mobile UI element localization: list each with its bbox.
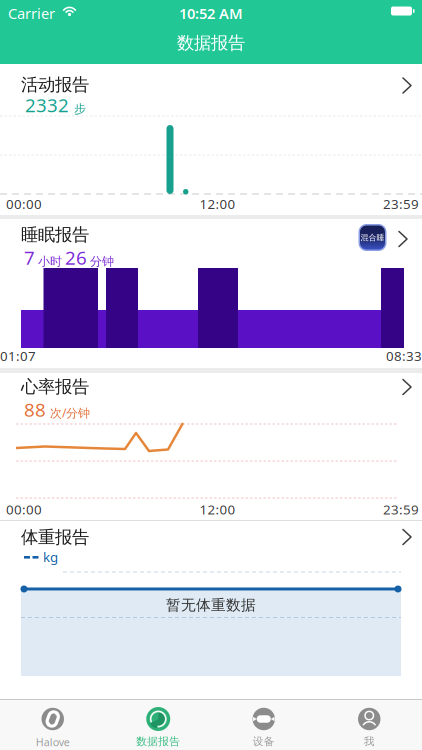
- staticText: 心率报告: [21, 376, 89, 397]
- staticText: 08:33: [386, 347, 422, 365]
- staticText: 88: [24, 397, 46, 422]
- button[interactable]: 心率报告: [0, 373, 422, 520]
- button[interactable]: 设备: [211, 700, 316, 750]
- staticText: 我: [364, 735, 375, 748]
- staticText: 数据报告: [136, 735, 180, 748]
- staticText: 步: [74, 102, 86, 116]
- staticText: 26: [65, 245, 87, 270]
- staticText: 活动报告: [21, 74, 89, 95]
- staticText: 01:07: [0, 347, 36, 365]
- staticText: 数据报告: [177, 32, 245, 54]
- staticText: 23:59: [383, 195, 419, 213]
- staticText: 00:00: [6, 195, 42, 213]
- staticText: Halove: [36, 735, 70, 749]
- staticText: 睡眠报告: [21, 224, 89, 245]
- staticText: 23:59: [383, 500, 419, 518]
- staticText: 00:00: [6, 500, 42, 518]
- staticText: kg: [43, 548, 58, 566]
- staticText: Carrier: [8, 3, 55, 23]
- staticText: 12:00: [199, 500, 235, 518]
- staticText: 设备: [253, 735, 275, 748]
- button[interactable]: 我: [316, 700, 422, 750]
- staticText: 小时: [38, 254, 62, 269]
- staticText: 分钟: [90, 254, 114, 269]
- button[interactable]: 混合睡: [358, 224, 386, 251]
- staticText: 暂无体重数据: [166, 596, 256, 614]
- staticText: 体重报告: [21, 526, 89, 548]
- staticText: 混合睡: [360, 233, 384, 242]
- staticText: 7: [24, 245, 35, 270]
- staticText: 10:52 AM: [179, 3, 243, 23]
- staticText: 次/分钟: [50, 405, 90, 421]
- button[interactable]: 睡眠报告: [0, 219, 422, 368]
- button[interactable]: 数据报告: [105, 700, 211, 750]
- staticText: 12:00: [199, 195, 235, 213]
- button[interactable]: Halove: [0, 700, 105, 750]
- button[interactable]: 活动报告: [0, 64, 422, 215]
- button[interactable]: 体重报告: [0, 521, 422, 691]
- staticText: 2332: [25, 92, 69, 117]
